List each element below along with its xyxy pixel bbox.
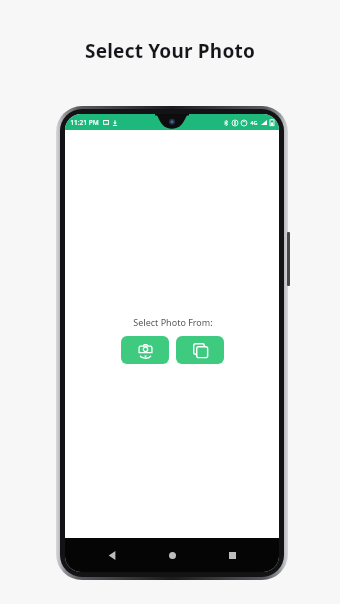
staticText: Select Your Photo — [85, 38, 255, 64]
button[interactable]: Take photo with camera — [121, 336, 169, 364]
button[interactable]: Choose photo from gallery — [176, 336, 224, 364]
button[interactable]: Home — [159, 542, 185, 568]
staticText: 4G — [250, 119, 258, 126]
button[interactable]: Recent apps — [219, 542, 245, 568]
staticText: Select Photo From: — [133, 316, 213, 328]
staticText: 11:21 PM — [70, 118, 99, 127]
button[interactable]: Back — [99, 542, 125, 568]
